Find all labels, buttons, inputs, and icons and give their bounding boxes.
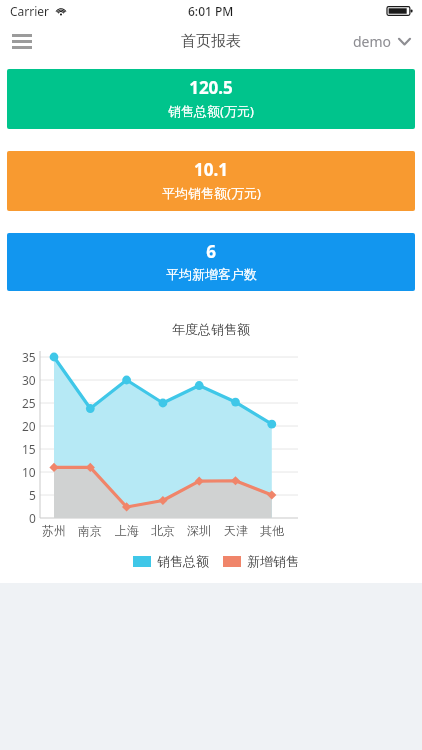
button[interactable]: 10.1 [7,151,415,211]
button[interactable]: Menu [0,22,44,60]
staticText: 20 [22,418,36,434]
staticText: 6:01 PM [188,3,234,19]
button[interactable]: 120.5 [7,69,415,129]
staticText: 30 [22,372,36,388]
staticText: 销售总额 [157,553,209,569]
staticText: 10.1 [194,158,228,181]
staticText: 其他 [260,523,284,538]
button[interactable]: demo [341,26,422,57]
staticText: 25 [22,395,36,411]
staticText: 北京 [151,523,175,538]
staticText: 15 [22,441,36,457]
staticText: 天津 [224,523,248,538]
staticText: 5 [29,487,36,503]
staticText: 120.5 [189,76,233,99]
staticText: 首页报表 [181,32,241,51]
staticText: 平均新增客户数 [166,266,257,282]
button[interactable]: 销售总额 [133,551,209,571]
staticText: Carrier [10,3,50,19]
staticText: demo [353,32,392,51]
staticText: 深圳 [187,523,211,538]
staticText: 10 [22,464,36,480]
staticText: 35 [22,349,36,365]
button[interactable]: 6 [7,233,415,291]
staticText: 6 [206,240,216,263]
staticText: 南京 [78,523,102,538]
staticText: 苏州 [42,523,66,538]
staticText: 年度总销售额 [172,321,250,337]
button[interactable]: 新增销售 [223,551,299,571]
staticText: 销售总额(万元) [168,102,254,120]
staticText: 上海 [115,523,139,538]
staticText: 新增销售 [247,553,299,569]
staticText: 0 [29,510,36,526]
staticText: 平均销售额(万元) [162,184,261,202]
